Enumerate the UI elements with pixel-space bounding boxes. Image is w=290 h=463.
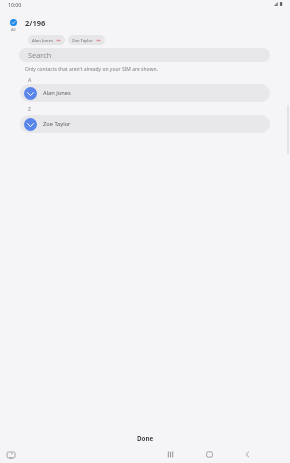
staticText: Done (137, 434, 154, 442)
staticText: All (11, 27, 16, 32)
button[interactable]: Recent apps (166, 450, 175, 459)
staticText: 2/196 (25, 18, 46, 28)
button[interactable]: Alan Jones (28, 35, 65, 45)
staticText: Z (28, 105, 31, 112)
button[interactable]: Back (243, 450, 252, 459)
staticText: A (28, 76, 32, 83)
button[interactable]: Done (0, 427, 290, 449)
button[interactable]: Search (19, 48, 270, 62)
button[interactable]: Alan Jones (20, 84, 270, 102)
button[interactable]: Zoe Taylor (20, 115, 270, 133)
button[interactable]: Home (205, 450, 214, 459)
staticText: Search (28, 50, 52, 60)
staticText: 10:00 (8, 1, 22, 8)
button[interactable]: Hide keyboard (6, 450, 16, 460)
staticText: Alan Jones (43, 89, 71, 97)
button[interactable]: Zoe Taylor (68, 35, 105, 45)
staticText: Alan Jones (32, 37, 53, 43)
staticText: Zoe Taylor (72, 37, 93, 43)
staticText: Only contacts that aren't already on you… (25, 66, 158, 73)
staticText: Zoe Taylor (43, 120, 71, 128)
button[interactable]: Select all (5, 17, 21, 32)
